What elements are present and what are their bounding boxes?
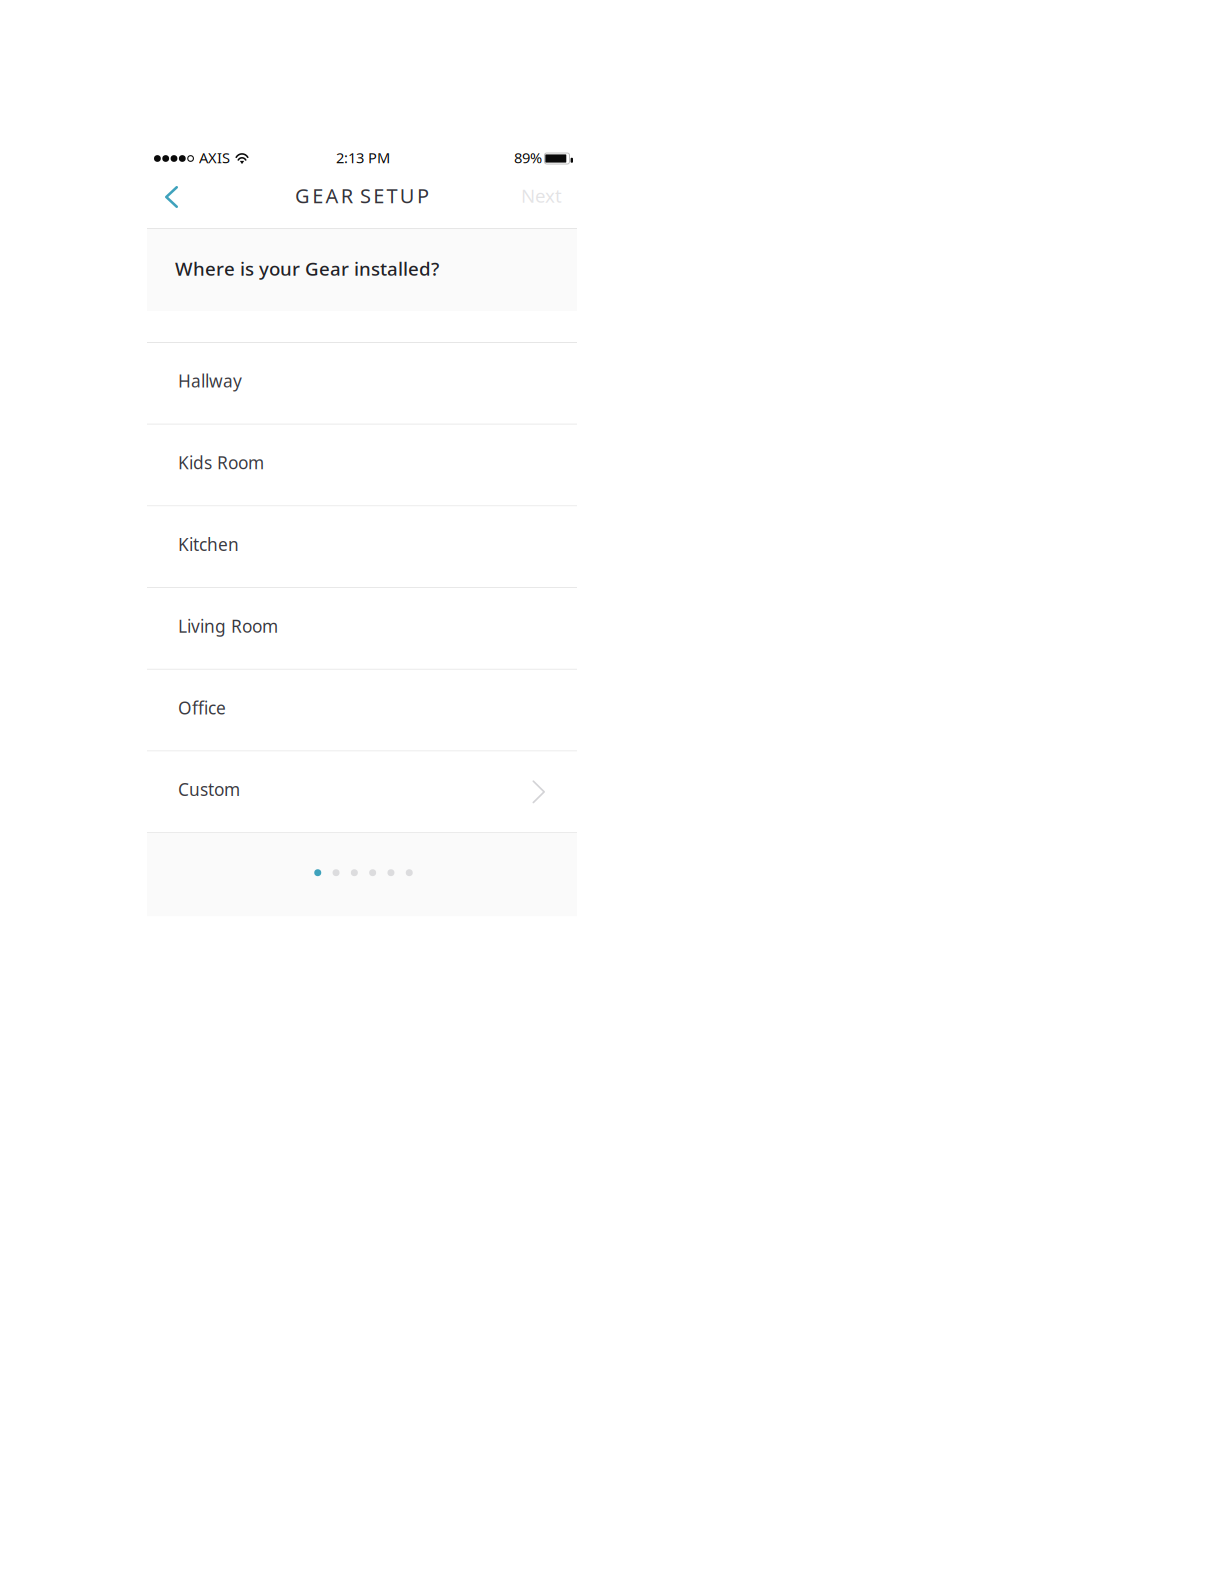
- staticText: 2:13 PM: [336, 148, 390, 167]
- button[interactable]: Office: [147, 670, 577, 750]
- button[interactable]: Kitchen: [147, 506, 577, 587]
- staticText: G: [295, 182, 310, 209]
- staticText: R: [341, 182, 353, 209]
- staticText: Hallway: [178, 369, 242, 392]
- staticText: E: [312, 182, 323, 209]
- staticText: Office: [178, 696, 226, 719]
- staticText: Where is your Gear installed?: [175, 256, 439, 281]
- button[interactable]: Custom: [147, 751, 577, 832]
- staticText: E: [373, 182, 384, 209]
- button[interactable]: Next: [497, 171, 577, 220]
- staticText: Kitchen: [178, 533, 239, 556]
- staticText: T: [386, 182, 397, 209]
- staticText: A: [325, 182, 338, 209]
- button[interactable]: Kids Room: [147, 425, 577, 505]
- staticText: Next: [521, 183, 562, 208]
- staticText: P: [417, 182, 429, 209]
- button[interactable]: Back: [147, 171, 202, 220]
- button[interactable]: Hallway: [147, 343, 577, 424]
- staticText: AXIS: [199, 148, 230, 167]
- staticText: U: [400, 182, 415, 209]
- staticText: Custom: [178, 778, 240, 801]
- button[interactable]: Living Room: [147, 588, 577, 669]
- staticText: 89%: [514, 148, 542, 167]
- staticText: Kids Room: [178, 451, 264, 474]
- staticText: S: [360, 182, 371, 209]
- staticText: Living Room: [178, 614, 278, 637]
